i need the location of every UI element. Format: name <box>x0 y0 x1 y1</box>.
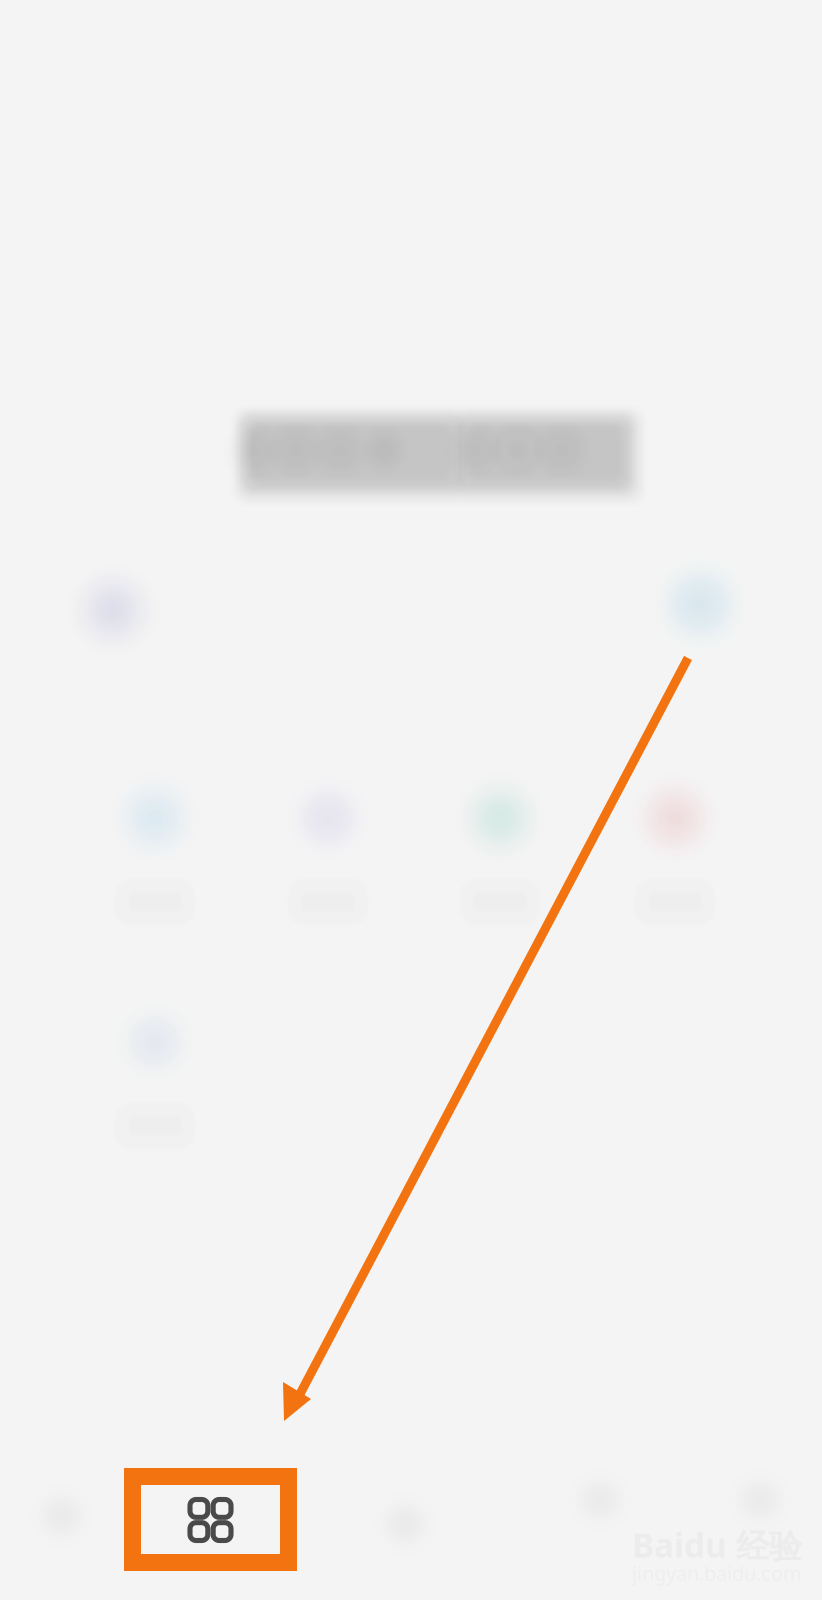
button[interactable]: Apps tab highlight <box>124 1468 297 1571</box>
staticText: Baidu 经验 <box>632 1523 802 1567</box>
button[interactable]: Apps <box>133 1472 288 1568</box>
